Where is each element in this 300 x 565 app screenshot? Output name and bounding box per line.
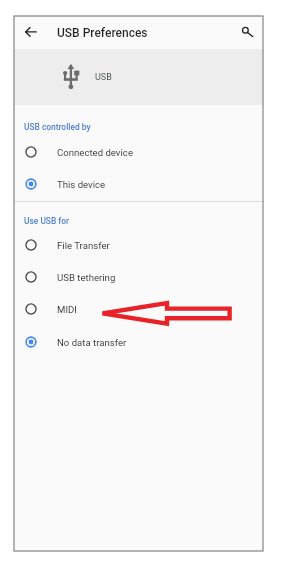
staticText: Use USB for	[24, 216, 70, 226]
staticText: USB Preferences	[57, 26, 148, 40]
staticText: USB tethering	[57, 272, 116, 283]
button[interactable]: Search	[234, 20, 258, 44]
staticText: No data transfer	[57, 337, 127, 348]
button[interactable]: This device	[14, 168, 263, 200]
button[interactable]: File Transfer	[14, 229, 263, 261]
staticText: MIDI	[57, 304, 77, 315]
staticText: USB	[95, 72, 112, 83]
button[interactable]: Connected device	[14, 136, 263, 168]
staticText: Connected device	[57, 147, 133, 158]
staticText: USB controlled by	[24, 122, 91, 132]
button[interactable]: USB tethering	[14, 261, 263, 293]
button[interactable]: MIDI	[14, 293, 263, 325]
button[interactable]: No data transfer	[14, 326, 263, 358]
staticText: File Transfer	[57, 240, 110, 251]
staticText: This device	[57, 179, 106, 190]
button[interactable]: Back	[22, 20, 42, 44]
